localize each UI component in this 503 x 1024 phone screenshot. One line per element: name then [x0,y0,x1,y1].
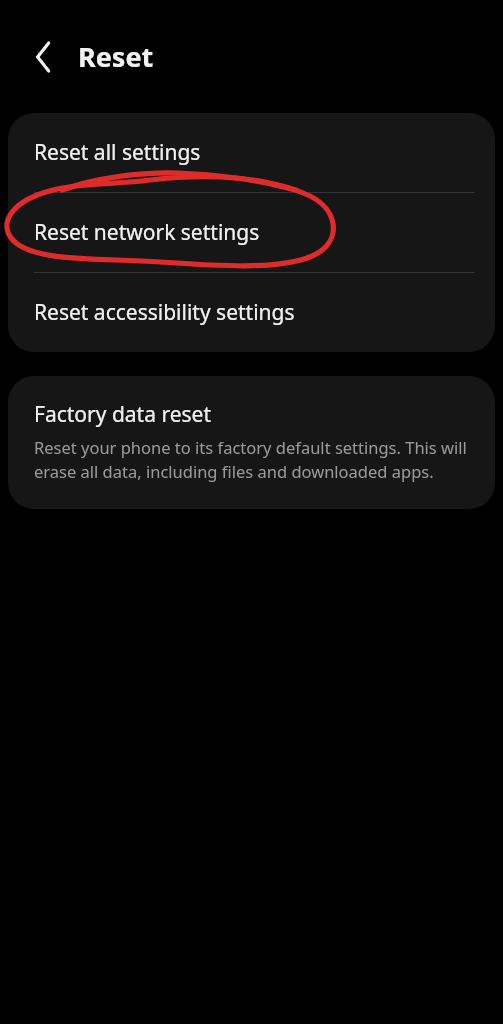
staticText: Reset network settings [34,218,260,247]
button[interactable]: Back [22,35,66,79]
button[interactable]: Reset all settings [8,113,495,192]
staticText: Reset accessibility settings [34,298,295,327]
staticText: Factory data reset [34,400,211,429]
button[interactable]: Reset accessibility settings [8,273,495,352]
button[interactable]: Factory data reset [8,376,495,509]
staticText: Reset all settings [34,138,201,167]
staticText: Reset [78,38,154,75]
button[interactable]: Reset network settings [8,193,495,272]
staticText: Reset your phone to its factory default … [34,436,473,483]
